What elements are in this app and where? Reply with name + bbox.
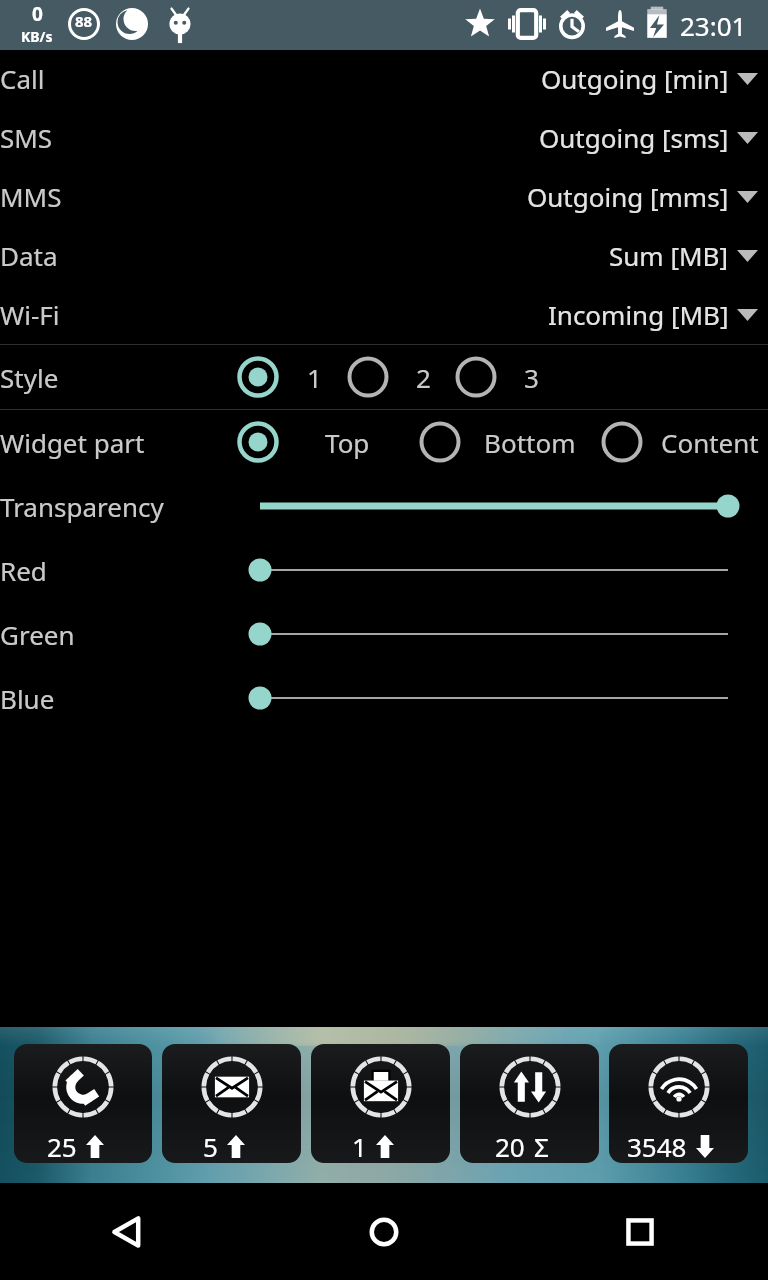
- staticText: Bottom: [484, 425, 576, 460]
- button[interactable]: MMS: [0, 167, 768, 226]
- staticText: Wi-Fi: [0, 297, 60, 332]
- button[interactable]: [234, 410, 282, 474]
- button[interactable]: [236, 474, 768, 538]
- button[interactable]: Call: [0, 49, 768, 108]
- staticText: 3548: [627, 1129, 687, 1163]
- button[interactable]: 3548: [609, 1044, 748, 1163]
- staticText: Call: [0, 61, 45, 96]
- staticText: 0: [32, 1, 43, 27]
- button[interactable]: 25: [14, 1044, 152, 1163]
- staticText: SMS: [0, 120, 53, 155]
- staticText: 2: [416, 360, 431, 395]
- button[interactable]: Recents: [512, 1183, 768, 1280]
- staticText: Content: [661, 425, 759, 460]
- staticText: Data: [0, 238, 58, 273]
- button[interactable]: [236, 602, 768, 666]
- button[interactable]: [344, 345, 392, 409]
- button[interactable]: [236, 538, 768, 602]
- staticText: 3: [524, 360, 539, 395]
- staticText: 1: [307, 360, 322, 395]
- staticText: Sum [MB]: [609, 238, 729, 273]
- staticText: Outgoing [min]: [541, 61, 729, 96]
- button[interactable]: 1: [311, 1044, 450, 1163]
- staticText: 1: [352, 1129, 367, 1163]
- button[interactable]: 20: [460, 1044, 599, 1163]
- button[interactable]: [416, 410, 464, 474]
- button[interactable]: [234, 345, 282, 409]
- button[interactable]: 5: [162, 1044, 301, 1163]
- staticText: Outgoing [mms]: [527, 179, 729, 214]
- staticText: 25: [47, 1129, 77, 1163]
- staticText: 20: [495, 1129, 525, 1163]
- staticText: Widget part: [0, 425, 145, 460]
- staticText: Transparency: [0, 489, 164, 524]
- button[interactable]: Back: [0, 1183, 256, 1280]
- staticText: MMS: [0, 179, 62, 214]
- button[interactable]: Data: [0, 226, 768, 285]
- staticText: Style: [0, 360, 59, 395]
- staticText: Red: [0, 553, 47, 588]
- staticText: Blue: [0, 681, 55, 716]
- button[interactable]: [598, 410, 646, 474]
- staticText: 88: [75, 11, 93, 31]
- staticText: Top: [325, 425, 370, 460]
- staticText: Incoming [MB]: [548, 297, 729, 332]
- button[interactable]: Home: [256, 1183, 512, 1280]
- button[interactable]: SMS: [0, 108, 768, 167]
- button[interactable]: [236, 666, 768, 730]
- staticText: KB/s: [21, 27, 53, 46]
- staticText: 23:01: [680, 8, 747, 43]
- staticText: Σ: [534, 1129, 549, 1163]
- staticText: Outgoing [sms]: [539, 120, 729, 155]
- button[interactable]: [452, 345, 500, 409]
- staticText: Green: [0, 617, 75, 652]
- staticText: 5: [203, 1129, 218, 1163]
- button[interactable]: Wi-Fi: [0, 285, 768, 344]
